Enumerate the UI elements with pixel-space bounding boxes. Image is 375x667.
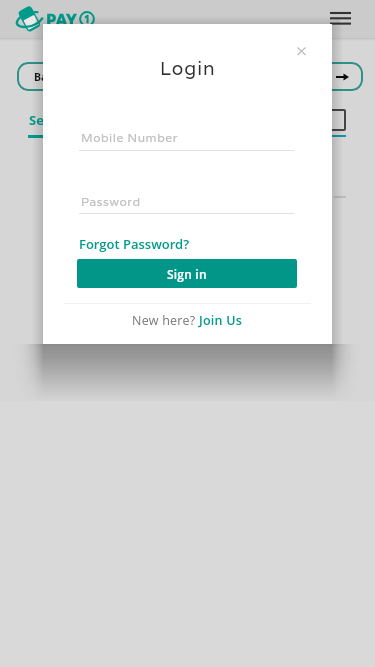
staticText: Balance [34,70,76,84]
staticText: Mobile Number [81,130,178,146]
staticText: Forgot Password? [79,235,190,253]
button[interactable]: Sign in [77,259,297,288]
staticText: Password [81,194,141,210]
staticText: Login [160,56,216,81]
staticText: 1 [84,12,90,26]
other: Go [336,70,349,83]
button[interactable]: Close [290,40,310,60]
staticText: Join Us [199,312,243,329]
staticText: Sign in [167,266,207,282]
button[interactable]: Forgot Password? [79,235,190,253]
button[interactable]: Balance [17,62,363,91]
button[interactable]: Join Us [199,312,243,329]
staticText: Services [29,111,82,129]
staticText: PAY [46,8,77,30]
button[interactable]: Menu [328,8,353,29]
staticText: New here? [132,312,199,329]
